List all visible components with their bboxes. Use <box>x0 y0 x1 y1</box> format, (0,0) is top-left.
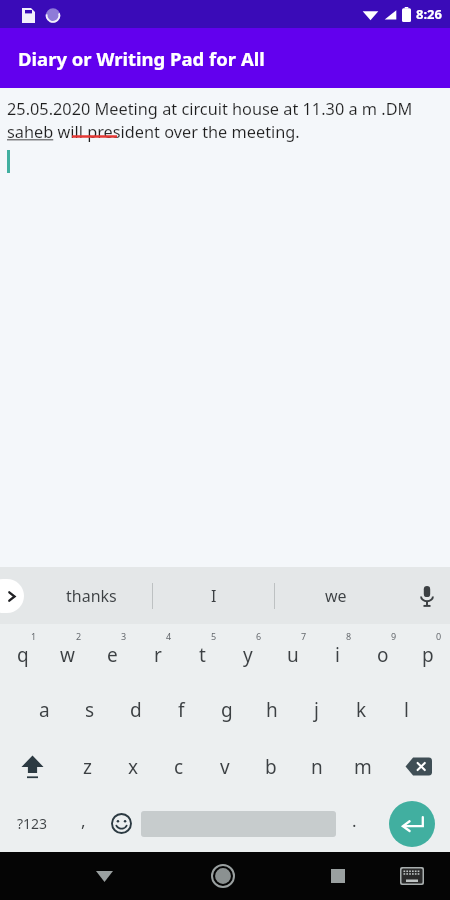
staticText: ?123 <box>17 814 48 833</box>
button[interactable]: n <box>294 738 340 795</box>
staticText: s <box>85 697 95 723</box>
button[interactable]: x <box>110 738 156 795</box>
staticText: 3 <box>121 630 127 642</box>
staticText: 6 <box>256 630 262 642</box>
button[interactable]: j <box>294 681 339 738</box>
staticText: t <box>199 642 206 668</box>
staticText: 7 <box>301 630 307 642</box>
staticText: 4 <box>166 630 172 642</box>
button[interactable]: h <box>249 681 294 738</box>
button[interactable]: q <box>0 624 45 681</box>
button[interactable]: . <box>336 795 373 852</box>
button[interactable]: f <box>159 681 204 738</box>
button[interactable]: Backspace <box>386 738 450 795</box>
staticText: q <box>17 642 29 668</box>
button[interactable]: s <box>67 681 113 738</box>
staticText: Diary or Writing Pad for All <box>18 46 265 71</box>
staticText: 0 <box>436 630 442 642</box>
button[interactable]: Emoji <box>101 795 141 852</box>
staticText: a <box>39 697 50 723</box>
button[interactable]: e <box>90 624 135 681</box>
staticText: 5 <box>211 630 217 642</box>
button[interactable]: u <box>270 624 315 681</box>
staticText: b <box>265 754 277 780</box>
staticText: u <box>287 642 299 668</box>
staticText: 2 <box>76 630 82 642</box>
button[interactable]: Enter <box>373 795 450 852</box>
staticText: 8 <box>346 630 352 642</box>
staticText: d <box>130 697 142 723</box>
button[interactable]: l <box>384 681 429 738</box>
staticText: 25.05.2020 Meeting at circuit house at 1… <box>7 98 440 143</box>
staticText: . <box>352 809 357 832</box>
staticText: y <box>243 642 253 668</box>
staticText: i <box>335 642 340 668</box>
button[interactable]: p <box>405 624 450 681</box>
staticText: l <box>404 697 409 723</box>
button[interactable]: we <box>275 567 396 624</box>
button[interactable]: z <box>64 738 110 795</box>
button[interactable]: ?123 <box>0 795 65 852</box>
staticText: o <box>377 642 389 668</box>
button[interactable]: y <box>225 624 270 681</box>
button[interactable]: k <box>339 681 384 738</box>
button[interactable]: b <box>248 738 294 795</box>
button[interactable]: Hide keyboard <box>75 852 134 900</box>
staticText: c <box>174 754 184 780</box>
staticText: g <box>221 697 233 723</box>
button[interactable]: o <box>360 624 405 681</box>
button[interactable]: v <box>202 738 248 795</box>
staticText: x <box>128 754 139 780</box>
staticText: , <box>81 809 86 832</box>
button[interactable]: Diary or Writing Pad for All <box>0 28 450 88</box>
button[interactable]: Space <box>141 795 336 852</box>
staticText: z <box>83 754 92 780</box>
button[interactable]: 25.05.2020 Meeting at circuit house at 1… <box>0 88 450 567</box>
button[interactable]: t <box>180 624 225 681</box>
staticText: thanks <box>66 585 117 607</box>
staticText: 9 <box>391 630 397 642</box>
staticText: m <box>354 754 372 780</box>
button[interactable]: Voice input <box>404 573 450 619</box>
button[interactable]: g <box>204 681 249 738</box>
staticText: w <box>60 642 75 668</box>
staticText: h <box>266 697 278 723</box>
button[interactable]: m <box>340 738 386 795</box>
button[interactable]: I <box>153 567 274 624</box>
staticText: r <box>154 642 162 668</box>
button[interactable]: i <box>315 624 360 681</box>
staticText: f <box>178 697 185 723</box>
button[interactable]: Home <box>193 852 252 900</box>
button[interactable]: Recent apps <box>308 852 367 900</box>
button[interactable]: thanks <box>30 567 152 624</box>
button[interactable]: w <box>45 624 90 681</box>
button[interactable]: a <box>21 681 67 738</box>
staticText: 1 <box>31 630 37 642</box>
button[interactable]: Shift <box>0 738 64 795</box>
staticText: v <box>220 754 230 780</box>
staticText: p <box>422 642 434 668</box>
staticText: n <box>311 754 323 780</box>
staticText: we <box>325 585 347 607</box>
button[interactable]: Expand toolbar <box>0 579 24 613</box>
staticText: k <box>356 697 367 723</box>
button[interactable]: d <box>113 681 159 738</box>
button[interactable]: Switch keyboard <box>382 852 441 900</box>
button[interactable]: , <box>65 795 101 852</box>
button[interactable]: c <box>156 738 202 795</box>
button[interactable]: r <box>135 624 180 681</box>
staticText: I <box>211 585 217 607</box>
staticText: 8:26 <box>416 5 442 23</box>
staticText: e <box>107 642 118 668</box>
staticText: j <box>314 697 319 723</box>
